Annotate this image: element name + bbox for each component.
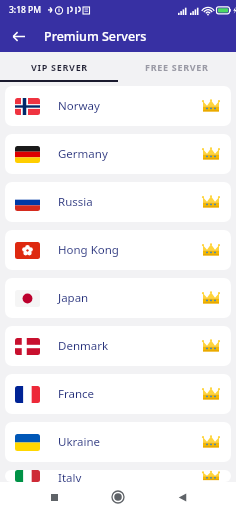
- staticText: FREE SERVER: [145, 61, 209, 73]
- button[interactable]: Denmark: [5, 326, 231, 366]
- button[interactable]: Russia: [5, 182, 231, 222]
- staticText: Germany: [58, 146, 108, 162]
- button[interactable]: Back: [170, 485, 194, 509]
- staticText: Premium Servers: [44, 28, 147, 45]
- button[interactable]: Home: [106, 485, 130, 509]
- button[interactable]: Italy: [5, 470, 231, 482]
- staticText: Ukraine: [58, 434, 101, 450]
- button[interactable]: Germany: [5, 134, 231, 174]
- button[interactable]: Back: [6, 24, 30, 48]
- staticText: Japan: [58, 290, 89, 306]
- staticText: France: [58, 386, 95, 402]
- button[interactable]: VIP SERVER: [0, 52, 118, 82]
- staticText: VIP SERVER: [31, 61, 88, 73]
- staticText: 3:18 PM: [9, 4, 42, 16]
- button[interactable]: FREE SERVER: [118, 52, 236, 82]
- staticText: Denmark: [58, 338, 109, 354]
- staticText: Hong Kong: [58, 242, 119, 258]
- staticText: Russia: [58, 194, 93, 210]
- button[interactable]: Ukraine: [5, 422, 231, 462]
- button[interactable]: Norway: [5, 86, 231, 126]
- button[interactable]: Recent apps: [42, 485, 66, 509]
- button[interactable]: Japan: [5, 278, 231, 318]
- button[interactable]: Hong Kong: [5, 230, 231, 270]
- button[interactable]: France: [5, 374, 231, 414]
- staticText: Norway: [58, 98, 100, 114]
- staticText: Italy: [58, 470, 82, 482]
